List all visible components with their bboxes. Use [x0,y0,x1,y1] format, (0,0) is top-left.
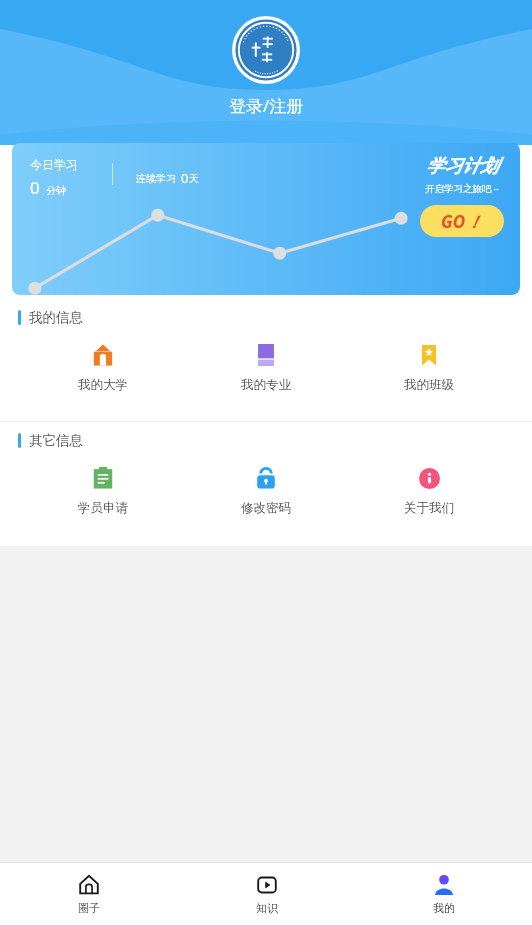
staticText: 关于我们 [404,500,454,516]
staticText: 0 [181,169,189,187]
staticText: 今日学习 [30,157,78,172]
staticText: 学员申请 [78,500,128,516]
button[interactable]: 我的专业 [206,334,326,401]
button[interactable]: 我的大学 [43,334,163,401]
button[interactable]: 知识 [178,867,355,921]
staticText: 分钟 [46,184,66,197]
staticText: 圈子 [78,901,100,915]
button[interactable]: 我的 [355,867,532,921]
button[interactable]: 学员申请 [43,457,163,524]
button[interactable]: 我的班级 [369,334,489,401]
staticText: 天 [189,172,199,185]
button[interactable]: 修改密码 [206,457,326,524]
button[interactable]: 今日学习 [12,143,520,295]
staticText: 我的大学 [78,377,128,393]
button[interactable]: School logo [232,16,300,84]
staticText: 其它信息 [29,432,83,449]
staticText: 我的 [433,901,455,915]
staticText: 连续学习 [136,172,176,185]
staticText: GO！ [441,210,483,233]
button[interactable]: 关于我们 [369,457,489,524]
staticText: 我的专业 [241,377,291,393]
staticText: 我的班级 [404,377,454,393]
button[interactable]: 登录/注册 [229,94,304,117]
staticText: 修改密码 [241,500,291,516]
button[interactable]: GO！ [420,205,504,237]
button[interactable]: 圈子 [0,867,178,921]
staticText: 登录/注册 [229,94,304,117]
staticText: 开启学习之旅吧 – [425,182,499,195]
staticText: 学习计划 [426,155,498,178]
staticText: 知识 [256,901,278,915]
staticText: 0 [30,176,40,199]
staticText: 我的信息 [29,309,83,326]
